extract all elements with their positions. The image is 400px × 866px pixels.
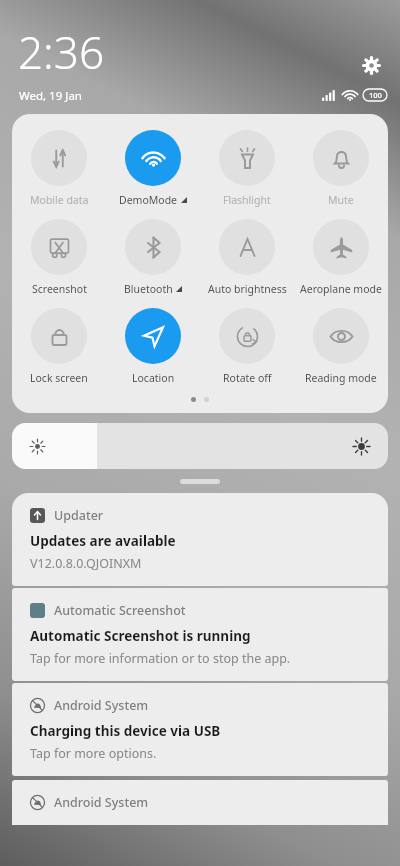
staticText: Mute: [328, 193, 354, 207]
staticText: Wed, 19 Jan: [19, 88, 82, 104]
staticText: Android System: [54, 697, 149, 714]
staticText: Mobile data: [30, 193, 89, 207]
staticText: Updater: [54, 507, 104, 524]
button[interactable]: Mute: [294, 127, 388, 210]
staticText: Charging this device via USB: [30, 722, 221, 740]
button[interactable]: DemoMode: [106, 127, 200, 210]
staticText: Android System: [54, 794, 149, 811]
staticText: Bluetooth: [124, 282, 173, 296]
button[interactable]: Android System: [12, 780, 388, 825]
staticText: Automatic Screenshot: [54, 602, 186, 619]
staticText: Flashlight: [223, 193, 271, 207]
staticText: Lock screen: [30, 371, 88, 385]
staticText: Reading mode: [305, 371, 377, 385]
staticText: Location: [132, 371, 175, 385]
staticText: Screenshot: [32, 282, 87, 296]
button[interactable]: Updater: [12, 493, 388, 586]
button[interactable]: Android System: [12, 683, 388, 776]
button[interactable]: Reading mode: [294, 305, 388, 388]
button[interactable]: Settings: [356, 50, 386, 80]
staticText: Auto brightness: [208, 282, 287, 296]
staticText: DemoMode: [119, 193, 178, 207]
staticText: Aeroplane mode: [300, 282, 382, 296]
button[interactable]: Aeroplane mode: [294, 216, 388, 299]
button[interactable]: Auto brightness: [200, 216, 294, 299]
staticText: Updates are available: [30, 532, 176, 550]
button[interactable]: Bluetooth: [106, 216, 200, 299]
staticText: Tap for more options.: [30, 745, 157, 762]
staticText: Rotate off: [223, 371, 272, 385]
staticText: 2:36: [18, 22, 105, 82]
button[interactable]: Automatic Screenshot: [12, 588, 388, 681]
button[interactable]: Brightness: [12, 423, 388, 469]
staticText: Tap for more information or to stop the …: [30, 650, 291, 667]
button[interactable]: Rotate off: [200, 305, 294, 388]
button[interactable]: Mobile data: [12, 127, 106, 210]
button[interactable]: Screenshot: [12, 216, 106, 299]
staticText: V12.0.8.0.QJOINXM: [30, 555, 142, 572]
button[interactable]: Lock screen: [12, 305, 106, 388]
staticText: Automatic Screenshot is running: [30, 627, 251, 645]
staticText: 100: [369, 90, 382, 100]
button[interactable]: Flashlight: [200, 127, 294, 210]
button[interactable]: Location: [106, 305, 200, 388]
